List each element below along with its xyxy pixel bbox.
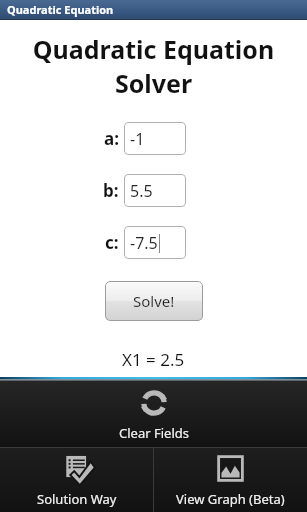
staticText: 5.5: [130, 180, 153, 202]
staticText: View Graph (Beta): [176, 490, 285, 508]
button[interactable]: Solution Way: [0, 448, 153, 512]
staticText: Quadratic Equation Solver: [0, 32, 307, 100]
button[interactable]: View Graph (Beta): [154, 448, 307, 512]
staticText: Solve!: [133, 291, 175, 311]
button[interactable]: -7.5: [124, 226, 186, 259]
staticText: -7.5: [130, 232, 158, 254]
staticText: -1: [130, 128, 145, 150]
staticText: c:: [105, 231, 119, 254]
staticText: X1 = 2.5: [122, 348, 185, 371]
button[interactable]: Clear Fields: [0, 381, 307, 447]
staticText: Clear Fields: [119, 424, 189, 442]
staticText: Quadratic Equation: [7, 2, 114, 17]
button[interactable]: 5.5: [124, 174, 186, 207]
staticText: X2 = 3: [130, 379, 178, 402]
staticText: a:: [104, 127, 119, 150]
staticText: Solution Way: [37, 490, 117, 508]
staticText: b:: [103, 179, 119, 202]
button[interactable]: Solve!: [105, 281, 203, 321]
button[interactable]: -1: [124, 122, 186, 155]
